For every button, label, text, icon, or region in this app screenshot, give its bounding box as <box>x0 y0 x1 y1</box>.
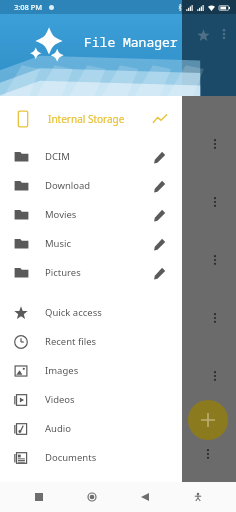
staticText: Pictures <box>45 266 81 279</box>
button[interactable]: Add <box>188 400 228 440</box>
staticText: 3:08 PM <box>14 2 43 12</box>
button[interactable]: Back <box>133 485 157 509</box>
staticText: DCIM <box>45 150 70 163</box>
button[interactable]: Images <box>0 356 182 385</box>
button[interactable]: Movies <box>0 200 182 229</box>
button[interactable]: Rename Movies <box>150 206 168 224</box>
staticText: Quick access <box>45 306 102 319</box>
button[interactable]: Music <box>0 229 182 258</box>
button[interactable]: Download <box>0 171 182 200</box>
button[interactable]: Quick access <box>0 298 182 327</box>
button[interactable]: Documents <box>0 443 182 472</box>
button[interactable]: Rename DCIM <box>150 148 168 166</box>
button[interactable]: Videos <box>0 385 182 414</box>
staticText: Images <box>45 364 79 377</box>
button[interactable]: Pictures <box>0 258 182 287</box>
button[interactable]: DCIM <box>0 142 182 171</box>
staticText: Videos <box>45 393 75 406</box>
staticText: File Manager <box>84 33 178 51</box>
button[interactable]: Rename Pictures <box>150 264 168 282</box>
staticText: Internal Storage <box>48 112 125 126</box>
button[interactable]: Home <box>80 485 104 509</box>
button[interactable]: Audio <box>0 414 182 443</box>
staticText: Movies <box>45 208 77 221</box>
button[interactable]: Recents <box>27 485 51 509</box>
button[interactable]: Rename Music <box>150 235 168 253</box>
button[interactable]: Accessibility <box>186 485 210 509</box>
button[interactable]: Internal Storage <box>0 96 182 142</box>
button[interactable]: Favorites <box>192 24 214 46</box>
button[interactable]: Recent files <box>0 327 182 356</box>
staticText: Recent files <box>45 335 97 348</box>
staticText: Music <box>45 237 72 250</box>
staticText: Documents <box>45 451 97 464</box>
staticText: Audio <box>45 422 71 435</box>
staticText: Download <box>45 179 91 192</box>
button[interactable]: Rename Download <box>150 177 168 195</box>
button[interactable]: More options <box>214 24 234 44</box>
